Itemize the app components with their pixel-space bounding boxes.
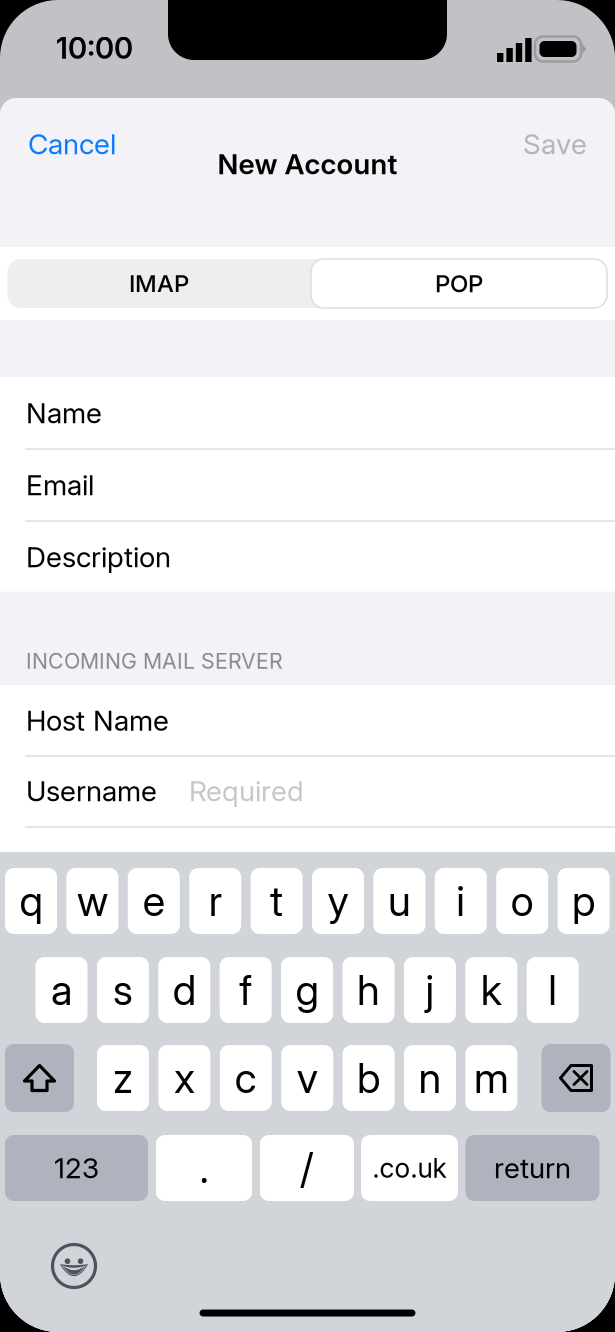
button[interactable]: h — [342, 957, 394, 1023]
button[interactable]: Email — [26, 449, 615, 521]
staticText: Save — [523, 127, 587, 161]
staticText: . — [199, 1143, 208, 1193]
button[interactable]: m — [465, 1045, 517, 1111]
button[interactable]: c — [220, 1045, 272, 1111]
button[interactable]: p — [558, 868, 610, 934]
staticText: k — [481, 965, 502, 1015]
staticText: j — [425, 965, 434, 1015]
button[interactable]: Name — [26, 377, 615, 449]
button[interactable]: o — [496, 868, 548, 934]
staticText: d — [173, 965, 196, 1015]
staticText: f — [239, 965, 252, 1015]
button[interactable]: Username — [26, 755, 615, 827]
button[interactable]: b — [343, 1045, 395, 1111]
staticText: x — [174, 1053, 195, 1103]
button[interactable]: x — [158, 1045, 210, 1111]
button[interactable]: IMAP — [7, 259, 310, 308]
staticText: Host Name — [26, 704, 169, 737]
button[interactable]: q — [5, 868, 57, 934]
staticText: IMAP — [129, 269, 189, 298]
staticText: INCOMING MAIL SERVER — [26, 648, 283, 674]
staticText: Name — [26, 396, 102, 430]
button[interactable]: l — [527, 957, 579, 1023]
staticText: g — [296, 965, 319, 1015]
button[interactable]: n — [404, 1045, 456, 1111]
button[interactable]: k — [465, 957, 517, 1023]
staticText: e — [143, 876, 165, 926]
staticText: 123 — [54, 1151, 99, 1185]
staticText: q — [19, 876, 42, 926]
staticText: n — [418, 1053, 441, 1103]
button[interactable]: POP — [311, 259, 607, 308]
staticText: Username — [26, 774, 157, 808]
staticText: .co.uk — [372, 1152, 446, 1184]
staticText: m — [474, 1053, 509, 1103]
button[interactable]: a — [35, 957, 87, 1023]
button[interactable]: Cancel — [28, 115, 150, 173]
button[interactable]: y — [312, 868, 364, 934]
staticText: New Account — [217, 147, 397, 181]
button[interactable]: return — [465, 1135, 599, 1201]
staticText: z — [113, 1053, 133, 1103]
button[interactable]: Emoji keyboard — [42, 1234, 106, 1298]
button[interactable]: / — [260, 1135, 354, 1201]
staticText: b — [357, 1053, 380, 1103]
staticText: i — [456, 876, 465, 926]
staticText: POP — [435, 269, 483, 298]
staticText: w — [77, 876, 108, 926]
button[interactable]: Host Name — [26, 684, 615, 756]
staticText: u — [388, 876, 411, 926]
button[interactable]: . — [156, 1135, 252, 1201]
staticText: return — [494, 1151, 571, 1185]
button[interactable]: f — [220, 957, 272, 1023]
staticText: v — [297, 1053, 318, 1103]
button[interactable]: .co.uk — [361, 1135, 458, 1201]
staticText: h — [357, 965, 380, 1015]
button[interactable]: Save — [477, 115, 587, 173]
button[interactable]: g — [281, 957, 333, 1023]
button[interactable]: j — [404, 957, 456, 1023]
staticText: Description — [26, 540, 171, 574]
staticText: 10:00 — [56, 30, 133, 66]
button[interactable]: Shift — [5, 1044, 74, 1112]
button[interactable]: v — [281, 1045, 333, 1111]
button[interactable]: w — [66, 868, 118, 934]
staticText: o — [511, 876, 534, 926]
staticText: c — [235, 1053, 257, 1103]
staticText: s — [113, 965, 133, 1015]
staticText: y — [327, 876, 348, 926]
staticText: r — [209, 876, 222, 926]
button[interactable]: u — [373, 868, 425, 934]
button[interactable]: 123 — [5, 1135, 148, 1201]
button[interactable]: Delete — [541, 1044, 610, 1112]
staticText: a — [51, 965, 72, 1015]
button[interactable]: i — [435, 868, 487, 934]
staticText: Required — [189, 774, 304, 808]
staticText: t — [270, 876, 283, 926]
button[interactable]: r — [189, 868, 241, 934]
button[interactable]: s — [97, 957, 149, 1023]
staticText: l — [548, 965, 557, 1015]
button[interactable]: Description — [26, 521, 615, 593]
staticText: p — [572, 876, 595, 926]
button[interactable]: z — [97, 1045, 149, 1111]
staticText: / — [300, 1143, 314, 1193]
staticText: Email — [26, 468, 94, 502]
button[interactable]: d — [158, 957, 210, 1023]
button[interactable]: t — [251, 868, 303, 934]
button[interactable]: e — [128, 868, 180, 934]
staticText: Cancel — [28, 127, 116, 161]
